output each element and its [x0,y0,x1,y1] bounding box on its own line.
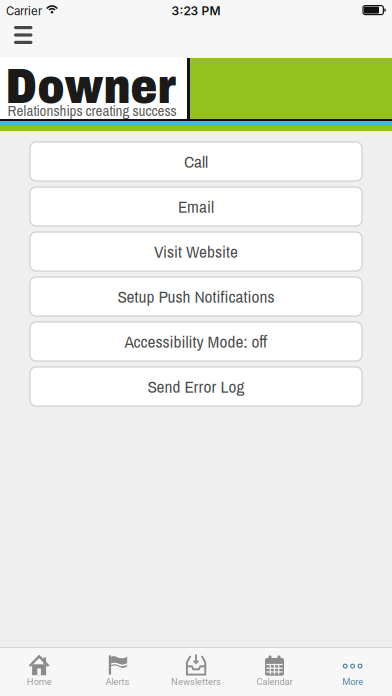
staticText: Calendar [256,676,292,687]
button[interactable]: Email [30,187,362,226]
staticText: Setup Push Notifications [117,285,274,308]
staticText: 3:23 PM [171,4,220,18]
staticText: Alerts [106,676,130,687]
staticText: Email [178,195,214,218]
button[interactable]: Send Error Log [30,367,362,406]
button[interactable]: Home [0,648,78,696]
button[interactable]: More [314,648,392,696]
button[interactable]: Accessibility Mode: off [30,322,362,361]
staticText: Visit Website [154,240,238,263]
button[interactable]: Newsletters [157,648,235,696]
button[interactable]: Call [30,142,362,181]
staticText: Downer [5,58,175,113]
button[interactable]: Menu [0,22,32,44]
button[interactable]: Alerts [78,648,157,696]
staticText: Carrier [6,4,42,18]
button[interactable]: Calendar [235,648,314,696]
staticText: Call [184,150,208,173]
staticText: Newsletters [171,676,221,687]
staticText: Send Error Log [147,375,244,398]
staticText: Home [27,676,52,687]
button[interactable]: Visit Website [30,232,362,271]
staticText: More [342,676,363,687]
staticText: Accessibility Mode: off [124,330,267,353]
button[interactable]: Setup Push Notifications [30,277,362,316]
staticText: Relationships creating success [7,100,176,121]
